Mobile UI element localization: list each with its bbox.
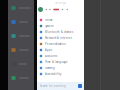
staticText: Settings bbox=[55, 1, 66, 4]
staticText: Apps bbox=[45, 48, 52, 52]
button[interactable]: Apps bbox=[37, 47, 84, 53]
button[interactable]: System bbox=[37, 23, 84, 29]
button[interactable]: Bluetooth & devices bbox=[37, 29, 84, 35]
button[interactable]: Time & language bbox=[37, 59, 84, 65]
button[interactable]: Gaming bbox=[37, 65, 84, 71]
button[interactable]: Personalization bbox=[37, 41, 84, 47]
staticText: Search for a setting bbox=[40, 84, 66, 88]
button[interactable]: Home bbox=[37, 17, 84, 23]
staticText: Personalization bbox=[45, 42, 66, 46]
staticText: Network & internet bbox=[45, 36, 72, 40]
button[interactable]: Accessibility bbox=[37, 71, 84, 77]
staticText: Gaming bbox=[45, 66, 55, 70]
staticText: Time & language bbox=[45, 60, 68, 64]
button[interactable]: Network & internet bbox=[37, 35, 84, 41]
staticText: Accessibility bbox=[45, 72, 61, 76]
button[interactable]: Accounts bbox=[37, 53, 84, 59]
staticText: Home bbox=[45, 18, 53, 22]
staticText: System bbox=[45, 24, 53, 28]
staticText: Accounts bbox=[45, 54, 57, 58]
staticText: Bluetooth & devices bbox=[45, 30, 73, 34]
